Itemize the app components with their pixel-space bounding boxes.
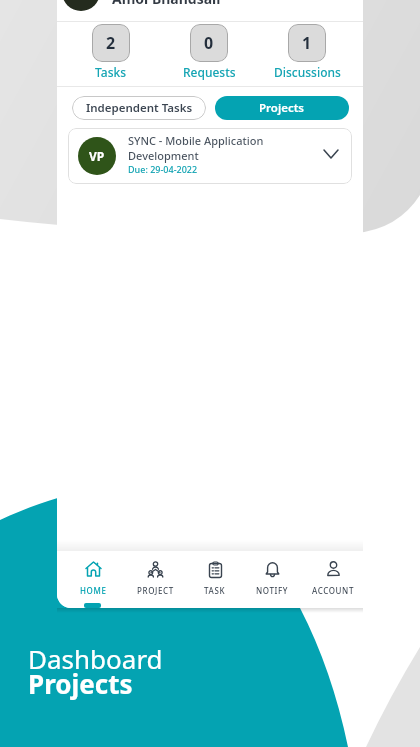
button[interactable]: Projects — [215, 96, 349, 120]
staticText: Projects — [28, 666, 133, 701]
button[interactable]: 1 — [288, 24, 326, 62]
staticText: Discussions — [274, 64, 341, 80]
staticText: TASK — [204, 585, 226, 596]
staticText: Projects — [259, 100, 305, 116]
staticText: Tasks — [95, 64, 127, 80]
button[interactable]: Independent Tasks — [72, 96, 206, 120]
button[interactable]: TASK — [187, 560, 243, 596]
staticText: PROJECT — [137, 585, 174, 596]
staticText: 2 — [106, 32, 116, 54]
button[interactable]: 0 — [190, 24, 228, 62]
staticText: SYNC - Mobile Application — [128, 133, 264, 148]
staticText: ACCOUNT — [312, 585, 354, 596]
staticText: Amol Bhandsali — [112, 0, 221, 8]
button[interactable]: HOME — [65, 560, 121, 596]
staticText: Development — [128, 148, 199, 163]
staticText: HOME — [80, 585, 107, 596]
staticText: Due: 29-04-2022 — [128, 163, 198, 175]
staticText: Dashboard — [28, 641, 163, 676]
staticText: Requests — [183, 64, 236, 80]
button[interactable]: VP — [68, 128, 352, 184]
staticText: Independent Tasks — [86, 100, 193, 116]
button[interactable]: NOTIFY — [244, 560, 300, 596]
staticText: 1 — [302, 32, 312, 54]
button[interactable]: PROJECT — [127, 560, 183, 596]
staticText: 0 — [204, 32, 214, 54]
staticText: NOTIFY — [256, 585, 289, 596]
staticText: VP — [89, 148, 105, 164]
button[interactable]: ACCOUNT — [305, 560, 361, 596]
button[interactable]: 2 — [92, 24, 130, 62]
